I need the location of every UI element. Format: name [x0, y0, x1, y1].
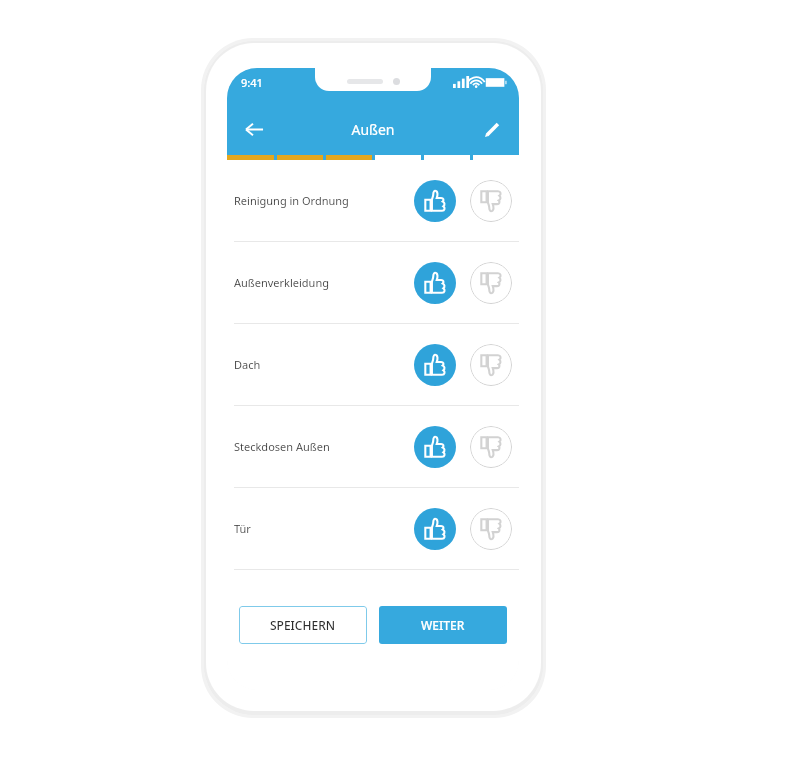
- button[interactable]: Thumbs down: [468, 260, 514, 306]
- button[interactable]: Dach: [227, 324, 519, 405]
- button[interactable]: Back: [239, 114, 269, 144]
- staticText: Außenverkleidung: [234, 275, 412, 290]
- staticText: Steckdosen Außen: [234, 439, 412, 454]
- button[interactable]: SPEICHERN: [239, 606, 367, 644]
- button[interactable]: Steckdosen Außen: [227, 406, 519, 487]
- staticText: Tür: [234, 521, 412, 536]
- button[interactable]: Thumbs down: [468, 424, 514, 470]
- button[interactable]: Thumbs down: [468, 342, 514, 388]
- staticText: Dach: [234, 357, 412, 372]
- button[interactable]: Außenverkleidung: [227, 242, 519, 323]
- button[interactable]: Tür: [227, 488, 519, 569]
- button[interactable]: Thumbs up: [412, 260, 458, 306]
- button[interactable]: Reinigung in Ordnung: [227, 160, 519, 241]
- button[interactable]: Thumbs down: [468, 178, 514, 224]
- staticText: Außen: [269, 120, 477, 139]
- button[interactable]: Thumbs up: [412, 506, 458, 552]
- button[interactable]: WEITER: [379, 606, 507, 644]
- staticText: Reinigung in Ordnung: [234, 193, 412, 208]
- staticText: 9:41: [241, 75, 263, 90]
- staticText: SPEICHERN: [270, 617, 336, 633]
- button[interactable]: Thumbs up: [412, 424, 458, 470]
- button[interactable]: Thumbs up: [412, 178, 458, 224]
- button[interactable]: Edit: [477, 114, 507, 144]
- staticText: WEITER: [421, 617, 465, 633]
- button[interactable]: Thumbs up: [412, 342, 458, 388]
- button[interactable]: Thumbs down: [468, 506, 514, 552]
